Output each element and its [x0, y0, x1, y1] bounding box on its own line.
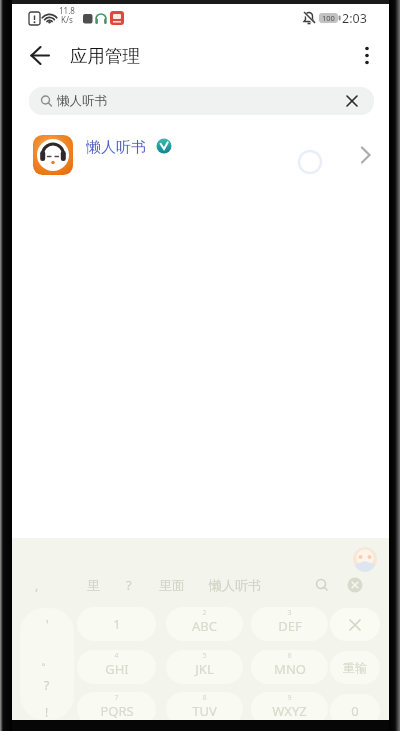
staticText: 。 — [41, 653, 53, 668]
staticText: 100 — [322, 13, 335, 23]
staticText: 0 — [351, 702, 359, 720]
staticText: 应用管理 — [70, 45, 140, 67]
button[interactable]: MNO — [251, 650, 328, 684]
button[interactable] — [353, 42, 381, 70]
staticText: 6 — [287, 651, 292, 661]
button[interactable] — [22, 42, 60, 70]
staticText: GHI — [105, 660, 129, 678]
staticText: JKL — [195, 660, 214, 678]
button[interactable] — [330, 608, 380, 641]
staticText: 8 — [202, 693, 207, 703]
staticText: ABC — [192, 617, 217, 635]
staticText: 懒人听书 — [86, 138, 146, 156]
button[interactable]: JKL — [166, 650, 243, 684]
staticText: 11.8 — [59, 5, 75, 15]
button[interactable] — [20, 608, 74, 720]
button[interactable] — [12, 126, 389, 184]
staticText: ? — [44, 677, 50, 693]
button[interactable] — [340, 89, 364, 113]
staticText: 里面 — [159, 577, 185, 593]
button[interactable]: ABC — [166, 607, 243, 641]
button[interactable]: WXYZ — [251, 692, 328, 726]
button[interactable]: TUV — [166, 692, 243, 726]
button[interactable]: DEF — [251, 607, 328, 641]
button[interactable]: 0 — [330, 694, 380, 728]
staticText: WXYZ — [272, 702, 307, 720]
staticText: 懒人听书 — [209, 577, 261, 593]
staticText: 2:03 — [342, 10, 367, 27]
staticText: 里 — [87, 577, 100, 593]
staticText: ? — [126, 576, 132, 594]
staticText: K/s — [61, 14, 73, 24]
staticText: 1 — [113, 615, 121, 633]
staticText: 3 — [287, 608, 292, 618]
staticText: 5 — [202, 651, 207, 661]
staticText: ' — [46, 616, 49, 632]
staticText: TUV — [192, 702, 217, 720]
staticText: 4 — [114, 651, 119, 661]
staticText: 9 — [287, 693, 292, 703]
staticText: 懒人听书 — [57, 93, 107, 109]
staticText: 7 — [114, 693, 119, 703]
staticText: PQRS — [100, 702, 134, 720]
button[interactable]: 重输 — [330, 651, 380, 684]
staticText: 重输 — [343, 660, 367, 675]
staticText: 2 — [202, 608, 207, 618]
button[interactable]: PQRS — [77, 692, 156, 726]
staticText: ! — [45, 704, 49, 720]
staticText: DEF — [278, 617, 302, 635]
staticText: MNO — [274, 660, 306, 678]
button[interactable]: GHI — [77, 650, 156, 684]
staticText: , — [35, 576, 39, 594]
button[interactable] — [29, 87, 374, 115]
